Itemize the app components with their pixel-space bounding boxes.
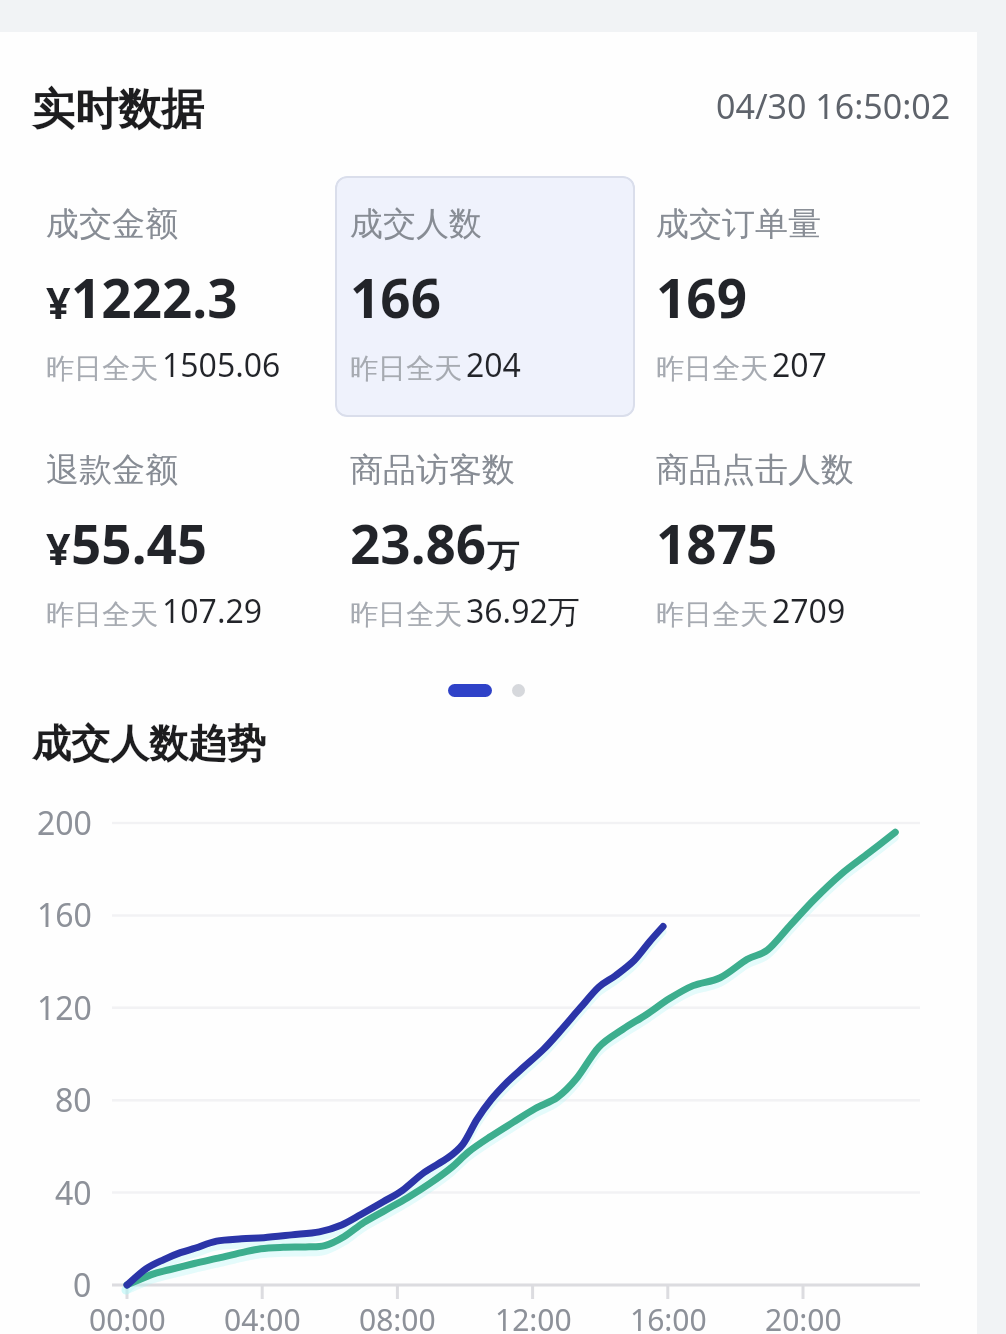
staticText: 36.92万: [466, 589, 580, 633]
staticText: 商品点击人数: [656, 449, 854, 491]
button[interactable]: 退款金额: [31, 422, 331, 663]
staticText: 1875: [656, 507, 778, 579]
staticText: 80: [55, 1078, 92, 1122]
button[interactable]: 商品访客数: [335, 422, 635, 663]
staticText: 04:00: [224, 1299, 301, 1334]
staticText: 实时数据: [32, 83, 204, 137]
staticText: 04/30 16:50:02: [716, 83, 951, 129]
staticText: 23.86: [350, 507, 487, 579]
staticText: 昨日全天: [656, 597, 768, 632]
staticText: 昨日全天: [46, 597, 158, 632]
staticText: 1222.3: [71, 261, 238, 333]
staticText: 成交订单量: [656, 203, 821, 245]
staticText: 商品访客数: [350, 449, 515, 491]
button[interactable]: 成交金额: [31, 176, 331, 417]
staticText: ¥: [46, 273, 71, 332]
staticText: 成交人数: [350, 203, 482, 245]
staticText: 16:00: [630, 1299, 707, 1334]
staticText: 成交人数趋势: [32, 719, 266, 768]
button[interactable]: 成交订单量: [641, 176, 941, 417]
staticText: 12:00: [495, 1299, 572, 1334]
staticText: 40: [55, 1171, 92, 1215]
button[interactable]: Page indicator: [428, 664, 545, 717]
staticText: 160: [37, 893, 92, 937]
staticText: 204: [466, 343, 521, 387]
staticText: 昨日全天: [656, 351, 768, 386]
staticText: 20:00: [765, 1299, 842, 1334]
button[interactable]: 04/30 16:50:02: [700, 71, 967, 141]
staticText: 107.29: [162, 589, 263, 633]
button[interactable]: 商品点击人数: [641, 422, 941, 663]
staticText: 200: [37, 801, 92, 845]
staticText: 169: [656, 261, 747, 333]
staticText: 退款金额: [46, 449, 178, 491]
staticText: 昨日全天: [350, 597, 462, 632]
staticText: 昨日全天: [350, 351, 462, 386]
staticText: 166: [350, 261, 441, 333]
staticText: 昨日全天: [46, 351, 158, 386]
staticText: 成交金额: [46, 203, 178, 245]
staticText: 207: [772, 343, 827, 387]
staticText: 55.45: [71, 507, 208, 579]
staticText: 00:00: [89, 1299, 166, 1334]
staticText: 0: [73, 1263, 92, 1307]
staticText: 08:00: [359, 1299, 436, 1334]
staticText: 万: [487, 536, 519, 576]
staticText: ¥: [46, 519, 71, 578]
staticText: 2709: [772, 589, 846, 633]
staticText: 1505.06: [162, 343, 281, 387]
button[interactable]: 成交人数: [335, 176, 635, 417]
staticText: 120: [37, 986, 92, 1030]
